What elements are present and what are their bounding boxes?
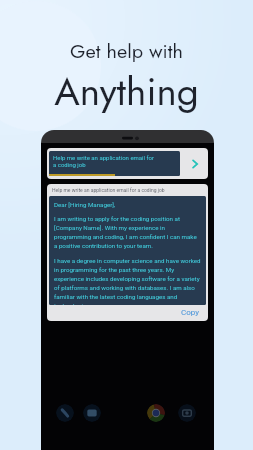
- button[interactable]: Camera: [178, 404, 196, 422]
- staticText: Anything: [54, 64, 199, 120]
- button[interactable]: Messages: [83, 404, 101, 422]
- staticText: Get help with: [70, 37, 183, 66]
- staticText: I am writing to apply for the coding pos…: [54, 215, 201, 250]
- button[interactable]: Phone: [56, 404, 74, 422]
- button[interactable]: Help me write an application email for a…: [47, 148, 208, 179]
- staticText: Help me write an application email for a…: [53, 154, 155, 169]
- staticText: Help me write an application email for a…: [52, 187, 165, 193]
- staticText: Dear [Hiring Manager],: [54, 201, 116, 208]
- button[interactable]: Send prompt: [181, 148, 208, 179]
- button[interactable]: Copy: [175, 306, 205, 319]
- button[interactable]: Chrome: [147, 404, 165, 422]
- staticText: I have a degree in computer science and …: [54, 257, 201, 305]
- staticText: Copy: [181, 308, 200, 317]
